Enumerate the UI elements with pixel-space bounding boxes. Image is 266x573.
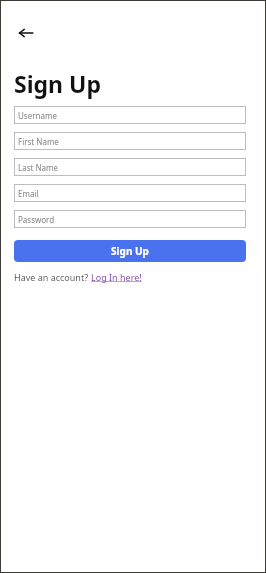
button[interactable]: Back	[14, 22, 38, 44]
button[interactable]: Password	[14, 210, 246, 228]
staticText: Sign Up	[14, 68, 101, 99]
staticText: Email	[18, 188, 39, 199]
button[interactable]: Log In here!	[91, 271, 142, 283]
staticText: Sign Up	[111, 244, 149, 258]
button[interactable]: Username	[14, 106, 246, 124]
staticText: Username	[18, 110, 57, 121]
staticText: Last Name	[18, 162, 59, 173]
button[interactable]: First Name	[14, 132, 246, 150]
staticText: Have an account?	[14, 271, 91, 283]
staticText: First Name	[18, 136, 59, 147]
button[interactable]: Sign Up	[14, 240, 246, 262]
button[interactable]: Email	[14, 184, 246, 202]
staticText: Log In here!	[91, 271, 142, 283]
button[interactable]: Last Name	[14, 158, 246, 176]
staticText: Password	[18, 214, 55, 225]
